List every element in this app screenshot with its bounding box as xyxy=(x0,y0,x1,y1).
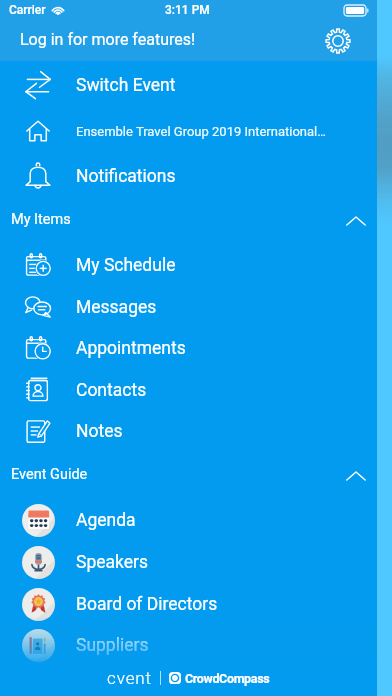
button[interactable]: Speakers xyxy=(0,541,377,583)
staticText: Messages xyxy=(76,297,157,318)
staticText: Suppliers xyxy=(76,635,149,656)
button[interactable]: Notes xyxy=(0,410,377,452)
staticText: cvent xyxy=(107,668,152,688)
button[interactable]: Contacts xyxy=(0,369,377,411)
button[interactable]: Log in for more features! xyxy=(0,0,377,61)
button[interactable]: Messages xyxy=(0,286,377,328)
other: Collapse section xyxy=(340,205,372,237)
button[interactable]: Appointments xyxy=(0,327,377,369)
button[interactable]: My Items xyxy=(0,204,377,238)
button[interactable]: Board of Directors xyxy=(0,583,377,625)
button[interactable]: Switch Event xyxy=(0,64,377,106)
staticText: Board of Directors xyxy=(76,594,218,615)
staticText: CrowdCompass xyxy=(185,671,270,686)
staticText: Notes xyxy=(76,421,123,442)
button[interactable]: Notifications xyxy=(0,155,377,197)
staticText: Agenda xyxy=(76,510,136,531)
button[interactable]: Ensemble Travel Group 2019 International… xyxy=(0,110,377,152)
staticText: Appointments xyxy=(76,338,186,359)
staticText: Notifications xyxy=(76,166,176,187)
staticText: Speakers xyxy=(76,552,148,573)
staticText: Carrier xyxy=(9,3,46,17)
button[interactable]: Event Guide xyxy=(0,459,377,493)
other: Collapse section xyxy=(340,460,372,492)
button[interactable]: Suppliers xyxy=(0,624,377,666)
button[interactable]: My Schedule xyxy=(0,244,377,286)
staticText: My Items xyxy=(11,211,71,228)
staticText: Ensemble Travel Group 2019 International… xyxy=(76,124,326,139)
staticText: 3:11 PM xyxy=(165,3,210,17)
staticText: Log in for more features! xyxy=(20,30,196,49)
staticText: Contacts xyxy=(76,380,147,401)
button[interactable]: Settings xyxy=(321,24,355,58)
staticText: My Schedule xyxy=(76,255,176,276)
staticText: Event Guide xyxy=(11,466,88,483)
button[interactable]: Agenda xyxy=(0,499,377,541)
staticText: Switch Event xyxy=(76,75,176,96)
